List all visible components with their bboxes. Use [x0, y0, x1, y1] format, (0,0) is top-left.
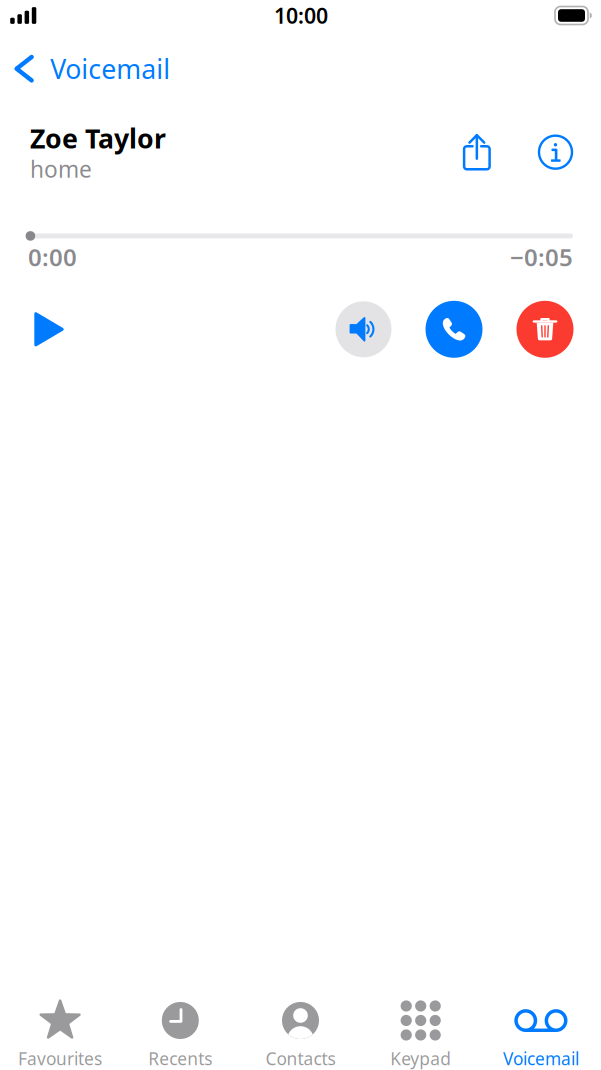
staticText: −0:05	[510, 241, 573, 273]
button[interactable]: Recents	[120, 986, 240, 1070]
staticText: Keypad	[390, 1047, 451, 1070]
button[interactable]: Share	[451, 129, 502, 176]
staticText: 0:00	[28, 241, 77, 273]
staticText: Voicemail	[503, 1047, 579, 1070]
button[interactable]: Voicemail	[481, 986, 601, 1070]
button[interactable]: Keypad	[361, 986, 481, 1070]
button[interactable]: Details	[530, 130, 581, 175]
button[interactable]: Play	[28, 306, 70, 353]
staticText: 10:00	[274, 1, 328, 30]
staticText: Favourites	[18, 1047, 102, 1070]
button[interactable]: Delete	[516, 301, 573, 358]
button[interactable]: Favourites	[0, 986, 120, 1070]
button[interactable]: Voicemail	[0, 31, 184, 95]
button[interactable]: Call back	[425, 301, 482, 358]
button[interactable]: Speaker	[335, 301, 391, 357]
staticText: Voicemail	[50, 51, 170, 86]
staticText: Contacts	[265, 1047, 335, 1070]
staticText: Zoe Taylor	[30, 120, 166, 156]
button[interactable]: Contacts	[240, 986, 361, 1070]
staticText: Recents	[148, 1047, 212, 1070]
staticText: home	[30, 154, 92, 184]
